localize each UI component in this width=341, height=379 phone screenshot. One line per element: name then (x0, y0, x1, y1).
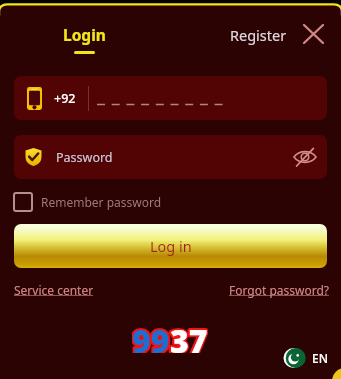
button[interactable]: Log in (14, 224, 327, 268)
button[interactable]: Show password (292, 144, 318, 170)
staticText: Log in (150, 236, 192, 256)
staticText: Login (63, 24, 106, 45)
staticText: 9937 (132, 319, 208, 353)
button[interactable]: Login (59, 24, 109, 54)
button[interactable]: Close (299, 20, 327, 48)
button[interactable]: Password (14, 135, 327, 179)
button[interactable]: Register (230, 25, 287, 45)
button[interactable]: Service center (14, 282, 94, 298)
button[interactable]: +92 (14, 76, 327, 120)
button[interactable]: Forgot password? (229, 282, 330, 298)
button[interactable]: Remember password (13, 192, 162, 212)
button[interactable]: EN (283, 348, 328, 368)
staticText: EN (312, 350, 328, 366)
staticText: +92 (54, 90, 76, 107)
staticText: 99 (132, 319, 170, 353)
staticText: Password (56, 149, 113, 166)
staticText: 37 (170, 319, 208, 353)
staticText: Remember password (41, 194, 162, 210)
